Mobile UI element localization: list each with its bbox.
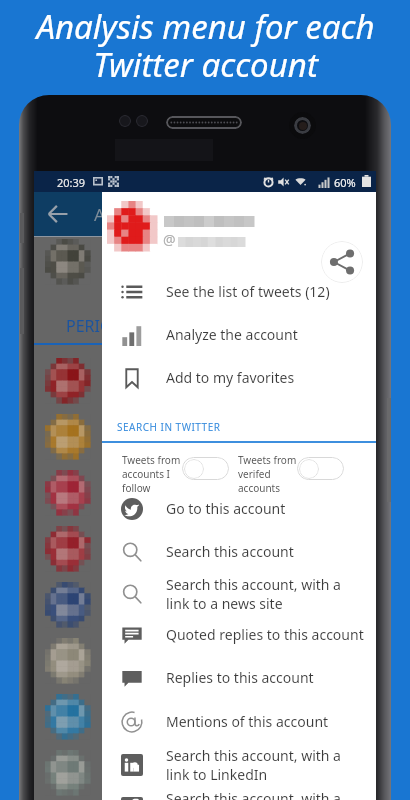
button[interactable]: Analyze the account bbox=[102, 313, 376, 356]
staticText: PERIO bbox=[66, 315, 113, 337]
staticText: See the list of tweets (12) bbox=[166, 282, 330, 301]
staticText: Add to my favorites bbox=[166, 368, 295, 387]
button[interactable]: Search this account, with a bbox=[102, 572, 376, 615]
staticText: 60% bbox=[334, 175, 356, 190]
staticText: link to a news site bbox=[166, 594, 283, 613]
staticText: Tweets from bbox=[238, 453, 297, 467]
button[interactable]: Toggle bbox=[182, 457, 229, 480]
button[interactable]: Add to my favorites bbox=[102, 356, 376, 399]
staticText: Search this account, with a bbox=[166, 575, 341, 594]
staticText: Go to this account bbox=[166, 499, 286, 518]
button[interactable]: Quoted replies to this account bbox=[102, 613, 376, 656]
staticText: A bbox=[94, 203, 105, 226]
staticText: Search this account, with a bbox=[166, 746, 341, 765]
button[interactable]: Search this account, with a bbox=[102, 786, 376, 800]
staticText: verifed bbox=[238, 467, 271, 481]
staticText: SEARCH IN TWITTER bbox=[117, 420, 221, 434]
button[interactable]: Share bbox=[321, 241, 363, 283]
button[interactable]: Search this account, with a bbox=[102, 743, 376, 786]
button[interactable]: Go to this account bbox=[102, 487, 376, 530]
staticText: Replies to this account bbox=[166, 668, 314, 687]
button[interactable]: Search this account bbox=[102, 530, 376, 573]
staticText: accounts bbox=[238, 481, 281, 495]
staticText: follow bbox=[122, 481, 151, 495]
staticText: Mentions of this account bbox=[166, 712, 329, 731]
staticText: Analysis menu for each bbox=[36, 4, 375, 49]
staticText: Quoted replies to this account bbox=[166, 625, 364, 644]
button[interactable]: Toggle bbox=[297, 457, 344, 480]
staticText: Search this account, with a bbox=[166, 789, 341, 800]
staticText: Twitter account bbox=[93, 42, 318, 87]
staticText: Tweets from bbox=[122, 453, 181, 467]
button[interactable]: Replies to this account bbox=[102, 656, 376, 699]
staticText: accounts I bbox=[122, 467, 171, 481]
staticText: 20:39 bbox=[57, 175, 86, 190]
staticText: link to LinkedIn bbox=[166, 765, 268, 784]
staticText: @ bbox=[163, 230, 176, 249]
button[interactable]: See the list of tweets (12) bbox=[102, 270, 376, 313]
staticText: Analyze the account bbox=[166, 325, 298, 344]
staticText: Search this account bbox=[166, 542, 294, 561]
button[interactable]: Mentions of this account bbox=[102, 700, 376, 743]
